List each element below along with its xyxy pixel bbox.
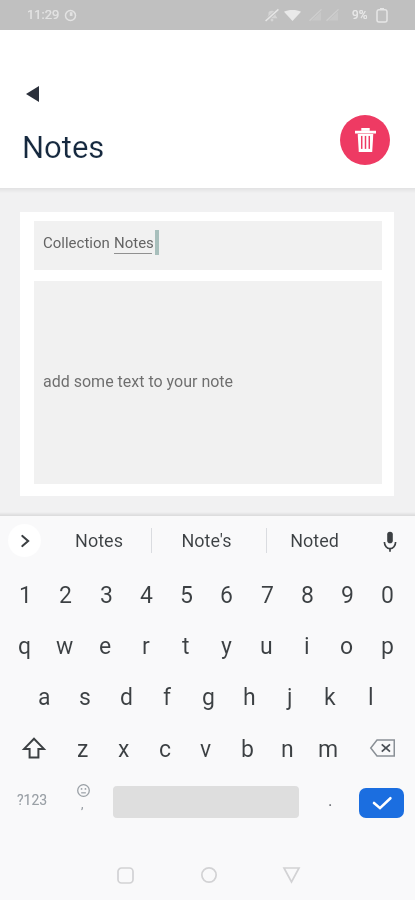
staticText: p bbox=[381, 633, 394, 660]
staticText: 3 bbox=[100, 582, 113, 609]
button[interactable]: More suggestions bbox=[8, 524, 41, 557]
staticText: . bbox=[328, 790, 333, 810]
button[interactable]: ?123 bbox=[7, 774, 57, 826]
staticText: Notes bbox=[75, 530, 123, 551]
button[interactable]: Notes bbox=[54, 518, 144, 562]
staticText: 9 bbox=[341, 582, 354, 609]
button[interactable]: y bbox=[206, 622, 246, 670]
button[interactable]: t bbox=[166, 622, 206, 670]
button[interactable]: h bbox=[229, 673, 269, 721]
staticText: 11:29 bbox=[27, 7, 60, 22]
staticText: c bbox=[159, 736, 172, 763]
button[interactable]: k bbox=[310, 673, 350, 721]
staticText: g bbox=[202, 684, 215, 711]
button[interactable]: s bbox=[65, 673, 105, 721]
button[interactable]: v bbox=[186, 725, 226, 773]
button[interactable]: Backspace bbox=[362, 724, 402, 772]
staticText: s bbox=[79, 684, 91, 711]
button[interactable]: c bbox=[145, 725, 185, 773]
button[interactable]: Shift bbox=[14, 724, 54, 772]
staticText: n bbox=[281, 736, 294, 763]
staticText: e bbox=[99, 633, 112, 660]
button[interactable]: b bbox=[227, 725, 267, 773]
staticText: 7 bbox=[261, 582, 274, 609]
button[interactable]: x bbox=[104, 725, 144, 773]
button[interactable]: e bbox=[85, 622, 125, 670]
button[interactable]: Home bbox=[191, 857, 227, 893]
staticText: add some text to your note bbox=[43, 372, 234, 391]
staticText: 1 bbox=[19, 582, 32, 609]
staticText: f bbox=[163, 684, 171, 711]
button[interactable]: Recents bbox=[107, 857, 143, 893]
button[interactable]: z bbox=[63, 725, 103, 773]
button[interactable]: m bbox=[308, 725, 348, 773]
staticText: 5 bbox=[180, 582, 193, 609]
button[interactable]: Collection bbox=[34, 221, 382, 270]
staticText: t bbox=[182, 633, 190, 660]
staticText: j bbox=[287, 684, 293, 711]
button[interactable]: Emoji bbox=[63, 774, 103, 826]
staticText: u bbox=[260, 633, 273, 660]
staticText: z bbox=[77, 736, 89, 763]
button[interactable]: u bbox=[246, 622, 286, 670]
staticText: b bbox=[241, 736, 254, 763]
button[interactable]: l bbox=[351, 673, 391, 721]
staticText: Note's bbox=[181, 530, 232, 551]
button[interactable]: 0 bbox=[367, 571, 407, 619]
button[interactable]: Back bbox=[13, 78, 51, 110]
staticText: Notes bbox=[22, 129, 105, 165]
button[interactable]: j bbox=[270, 673, 310, 721]
staticText: l bbox=[368, 684, 374, 711]
button[interactable]: Note's bbox=[161, 518, 251, 562]
staticText: 9% bbox=[352, 8, 368, 22]
staticText: 2 bbox=[59, 582, 72, 609]
button[interactable]: . bbox=[310, 774, 350, 826]
staticText: v bbox=[200, 736, 212, 763]
staticText: ?123 bbox=[17, 792, 48, 808]
button[interactable]: q bbox=[5, 622, 45, 670]
button[interactable]: r bbox=[126, 622, 166, 670]
staticText: q bbox=[18, 633, 32, 660]
staticText: x bbox=[118, 736, 130, 763]
staticText: Collection bbox=[43, 234, 114, 252]
button[interactable]: 6 bbox=[206, 571, 246, 619]
staticText: Noted bbox=[290, 530, 339, 551]
staticText: 0 bbox=[381, 582, 394, 609]
button[interactable]: 5 bbox=[166, 571, 206, 619]
button[interactable]: 8 bbox=[287, 571, 327, 619]
staticText: Notes bbox=[114, 234, 154, 252]
staticText: k bbox=[324, 684, 336, 711]
button[interactable]: o bbox=[327, 622, 367, 670]
staticText: 4 bbox=[140, 582, 153, 609]
staticText: d bbox=[120, 684, 133, 711]
staticText: m bbox=[318, 736, 339, 763]
button[interactable]: 2 bbox=[45, 571, 85, 619]
button[interactable]: g bbox=[188, 673, 228, 721]
button[interactable]: Noted bbox=[269, 518, 359, 562]
button[interactable]: 3 bbox=[86, 571, 126, 619]
staticText: , bbox=[81, 796, 84, 811]
button[interactable]: Back bbox=[273, 857, 309, 893]
button[interactable]: 9 bbox=[327, 571, 367, 619]
button[interactable]: 7 bbox=[247, 571, 287, 619]
button[interactable]: n bbox=[267, 725, 307, 773]
button[interactable]: w bbox=[45, 622, 85, 670]
button[interactable]: Delete bbox=[340, 115, 390, 165]
button[interactable]: 1 bbox=[5, 571, 45, 619]
staticText: 6 bbox=[220, 582, 233, 609]
button[interactable]: add some text to your note bbox=[34, 281, 382, 484]
button[interactable]: i bbox=[287, 622, 327, 670]
staticText: w bbox=[56, 633, 74, 660]
staticText: i bbox=[304, 633, 310, 660]
button[interactable]: p bbox=[367, 622, 407, 670]
button[interactable]: a bbox=[24, 673, 64, 721]
button[interactable]: Enter bbox=[359, 788, 404, 818]
button[interactable]: 4 bbox=[126, 571, 166, 619]
button[interactable]: Voice input bbox=[373, 525, 406, 558]
staticText: r bbox=[142, 633, 150, 660]
button[interactable]: d bbox=[106, 673, 146, 721]
button[interactable]: f bbox=[147, 673, 187, 721]
staticText: 8 bbox=[301, 582, 314, 609]
staticText: h bbox=[243, 684, 256, 711]
